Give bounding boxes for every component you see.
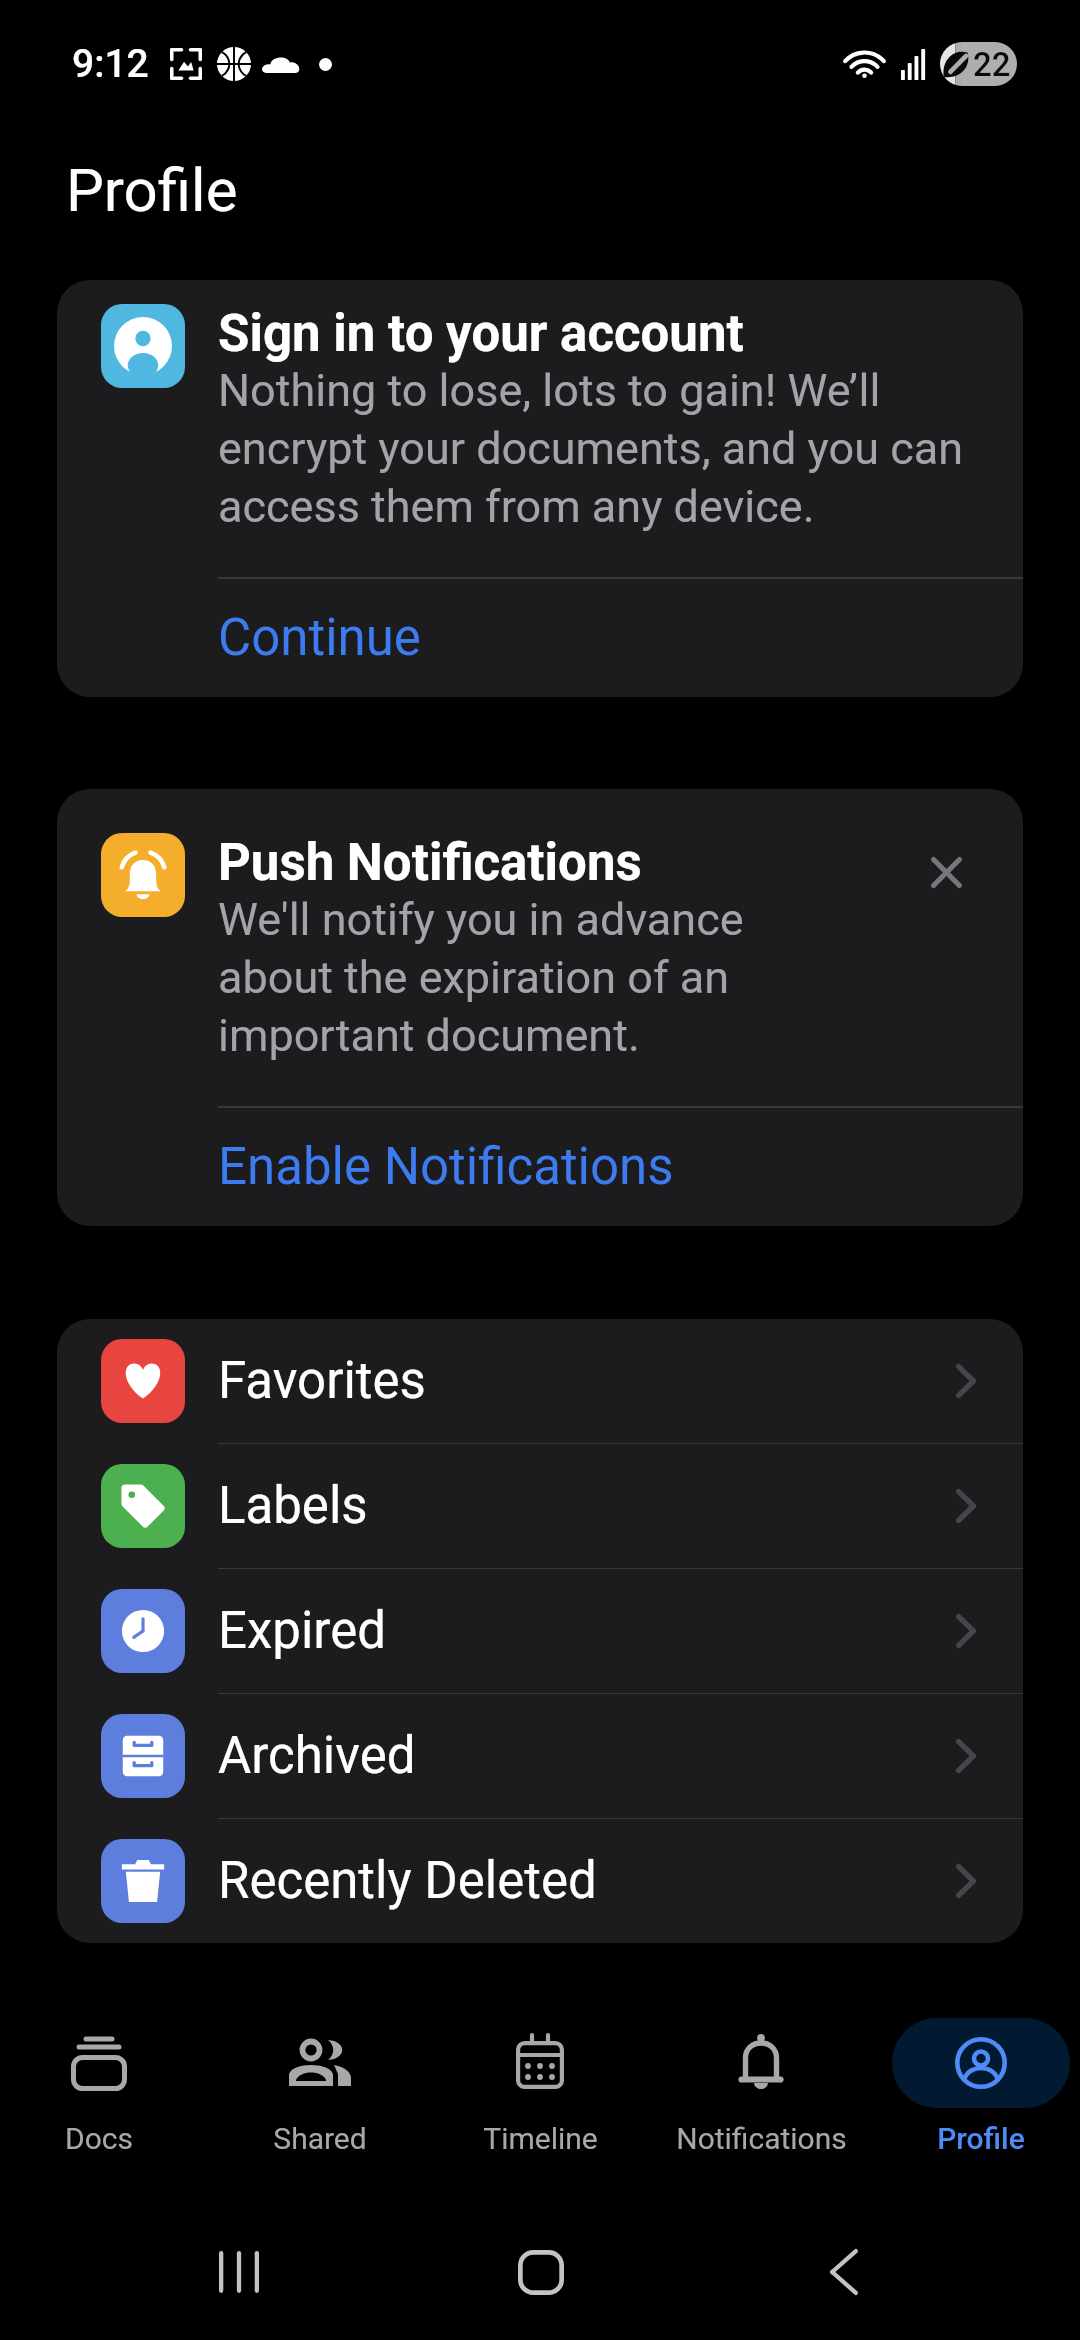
staticText: Push Notifications (218, 833, 642, 893)
staticText: We'll notify you in advance about the ex… (218, 893, 838, 1062)
button[interactable]: Notifications (672, 2018, 850, 2156)
staticText: Profile (66, 155, 238, 225)
staticText: Profile (937, 2121, 1025, 2156)
button[interactable]: Timeline (451, 2018, 629, 2156)
button[interactable]: Favorites (57, 1319, 1023, 1443)
staticText: Nothing to lose, lots to gain! We’ll enc… (218, 364, 1023, 533)
staticText: Recently Deleted (218, 1851, 597, 1911)
staticText: Labels (218, 1476, 368, 1536)
staticText: Archived (218, 1726, 416, 1786)
button[interactable]: Archived (57, 1694, 1023, 1818)
staticText: 22 (973, 45, 1011, 84)
button[interactable]: Expired (57, 1569, 1023, 1693)
staticText: Notifications (676, 2121, 847, 2156)
button[interactable]: Back (774, 2212, 914, 2332)
staticText: Continue (218, 608, 421, 668)
staticText: Sign in to your account (218, 304, 744, 364)
button[interactable]: Shared (231, 2018, 409, 2156)
staticText: 9:12 (72, 41, 149, 87)
staticText: Expired (218, 1601, 386, 1661)
button[interactable]: Continue (57, 579, 1023, 697)
staticText: Docs (65, 2121, 133, 2156)
button[interactable]: Labels (57, 1444, 1023, 1568)
button[interactable]: Docs (10, 2018, 188, 2156)
button[interactable]: Sign in to your account (57, 280, 1023, 697)
button[interactable]: Push Notifications (57, 789, 1023, 1226)
staticText: Favorites (218, 1351, 426, 1411)
staticText: Enable Notifications (218, 1137, 674, 1197)
staticText: Shared (273, 2121, 367, 2156)
button[interactable]: Enable Notifications (57, 1108, 1023, 1226)
button[interactable]: Recently Deleted (57, 1819, 1023, 1943)
button[interactable]: Profile (892, 2018, 1070, 2156)
button[interactable]: Home (471, 2212, 611, 2332)
button[interactable]: Dismiss (915, 841, 977, 903)
button[interactable]: Recents (169, 2212, 309, 2332)
staticText: Timeline (483, 2121, 598, 2156)
